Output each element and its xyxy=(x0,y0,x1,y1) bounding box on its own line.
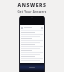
button[interactable] xyxy=(21,44,43,49)
button[interactable] xyxy=(21,56,43,61)
button[interactable] xyxy=(21,38,43,43)
button[interactable]: Menu xyxy=(21,26,43,29)
staticText: Get Your Answers xyxy=(17,10,47,14)
button[interactable]: ANSWERS xyxy=(0,2,64,9)
button[interactable] xyxy=(21,32,43,37)
button[interactable]: Menu xyxy=(19,16,45,72)
button[interactable]: Get Your Answers xyxy=(0,10,64,14)
button[interactable] xyxy=(21,50,43,55)
staticText: ANSWERS xyxy=(17,2,47,9)
